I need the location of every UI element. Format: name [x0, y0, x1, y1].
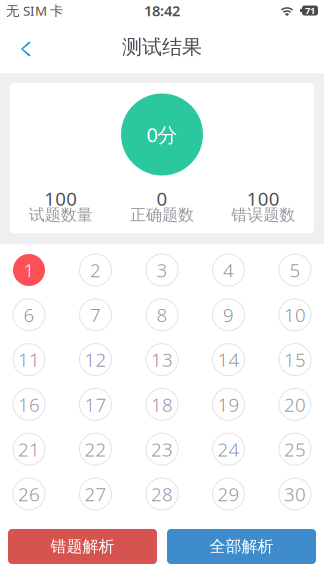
- button[interactable]: 4: [212, 254, 244, 286]
- staticText: 14: [217, 347, 239, 372]
- staticText: 29: [217, 482, 239, 506]
- staticText: 6: [23, 302, 34, 327]
- button[interactable]: 27: [79, 478, 111, 510]
- staticText: 20: [284, 392, 306, 417]
- button[interactable]: 16: [13, 388, 45, 420]
- staticText: 测试结果: [122, 35, 202, 59]
- button[interactable]: Back: [6, 31, 44, 63]
- staticText: 全部解析: [209, 537, 273, 556]
- staticText: 0分: [146, 121, 177, 148]
- button[interactable]: 11: [13, 344, 45, 376]
- button[interactable]: 19: [212, 388, 244, 420]
- button[interactable]: 9: [212, 299, 244, 331]
- button[interactable]: 30: [279, 478, 311, 510]
- staticText: 5: [289, 258, 300, 282]
- button[interactable]: 15: [279, 344, 311, 376]
- button[interactable]: 18: [146, 388, 178, 420]
- button[interactable]: 13: [146, 344, 178, 376]
- button[interactable]: 21: [13, 433, 45, 465]
- button[interactable]: 22: [79, 433, 111, 465]
- staticText: 17: [84, 392, 106, 417]
- staticText: 7: [90, 302, 101, 327]
- staticText: 9: [223, 302, 234, 327]
- staticText: 错误题数: [231, 205, 295, 225]
- staticText: 3: [156, 258, 167, 282]
- button[interactable]: 26: [13, 478, 45, 510]
- staticText: 13: [151, 347, 173, 372]
- staticText: 23: [151, 437, 173, 462]
- staticText: 22: [84, 437, 106, 462]
- button[interactable]: 20: [279, 388, 311, 420]
- staticText: 100: [44, 186, 77, 211]
- staticText: 试题数量: [29, 205, 93, 225]
- staticText: 10: [284, 302, 306, 327]
- staticText: 24: [217, 437, 239, 462]
- button[interactable]: 14: [212, 344, 244, 376]
- staticText: 16: [18, 392, 40, 417]
- staticText: 25: [284, 437, 306, 462]
- staticText: 21: [18, 437, 40, 462]
- button[interactable]: 25: [279, 433, 311, 465]
- staticText: 100: [247, 186, 280, 211]
- staticText: 15: [284, 347, 306, 372]
- staticText: 28: [151, 482, 173, 506]
- button[interactable]: 3: [146, 254, 178, 286]
- button[interactable]: 12: [79, 344, 111, 376]
- staticText: 71: [305, 4, 315, 17]
- staticText: 8: [156, 302, 167, 327]
- button[interactable]: 29: [212, 478, 244, 510]
- staticText: 11: [18, 347, 40, 372]
- button[interactable]: 8: [146, 299, 178, 331]
- staticText: 无 SIM 卡: [6, 2, 63, 19]
- button[interactable]: 28: [146, 478, 178, 510]
- staticText: 18: [151, 392, 173, 417]
- staticText: 正确题数: [130, 205, 194, 225]
- staticText: 2: [90, 258, 101, 282]
- button[interactable]: 7: [79, 299, 111, 331]
- staticText: 错题解析: [50, 537, 114, 556]
- button[interactable]: 5: [279, 254, 311, 286]
- button[interactable]: 17: [79, 388, 111, 420]
- staticText: 4: [223, 258, 234, 282]
- staticText: 26: [18, 482, 40, 506]
- button[interactable]: 10: [279, 299, 311, 331]
- button[interactable]: 24: [212, 433, 244, 465]
- staticText: 30: [284, 482, 306, 506]
- button[interactable]: 6: [13, 299, 45, 331]
- staticText: 18:42: [144, 1, 180, 20]
- button[interactable]: 2: [79, 254, 111, 286]
- staticText: 12: [84, 347, 106, 372]
- button[interactable]: 全部解析: [167, 529, 316, 564]
- staticText: 1: [23, 258, 34, 282]
- staticText: 19: [217, 392, 239, 417]
- staticText: 0: [156, 186, 167, 211]
- button[interactable]: 23: [146, 433, 178, 465]
- button[interactable]: 1: [13, 254, 45, 286]
- button[interactable]: 错题解析: [8, 529, 157, 564]
- staticText: 27: [84, 482, 106, 506]
